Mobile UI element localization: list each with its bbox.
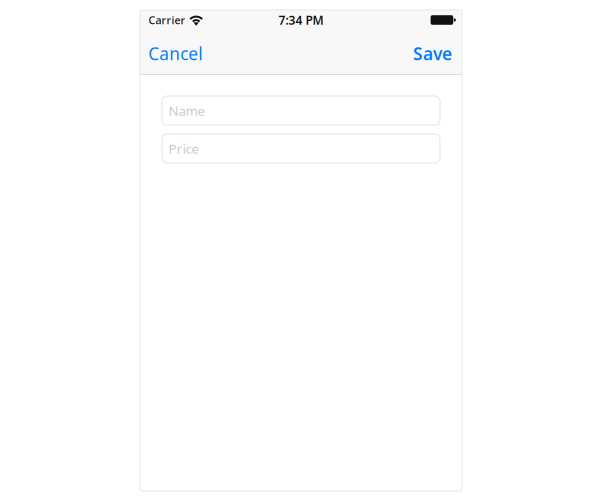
staticText: Cancel — [148, 42, 202, 65]
button[interactable]: Name — [162, 96, 440, 125]
button[interactable]: Price — [162, 134, 440, 163]
staticText: Name — [168, 102, 205, 119]
button[interactable]: Cancel — [140, 30, 214, 74]
staticText: 7:34 PM — [278, 12, 323, 28]
button[interactable]: Save — [401, 30, 462, 74]
staticText: Price — [168, 140, 199, 157]
staticText: Save — [413, 42, 452, 65]
staticText: Carrier — [148, 13, 185, 27]
